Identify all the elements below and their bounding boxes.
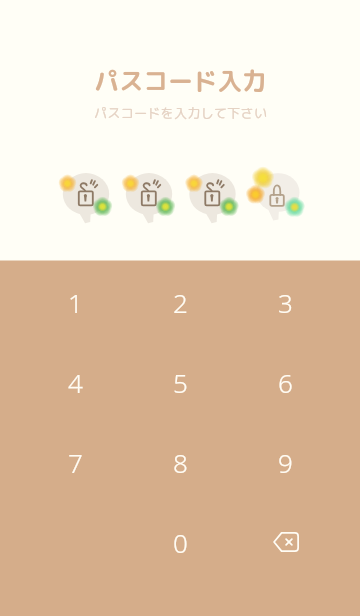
button[interactable]: 0 (128, 502, 233, 582)
button[interactable]: Delete last digit (233, 502, 338, 582)
staticText: 5 (173, 365, 188, 400)
staticText: 8 (173, 445, 188, 480)
button[interactable]: 5 (128, 342, 233, 422)
button[interactable]: 3 (233, 262, 338, 342)
staticText: パスコード入力 (94, 64, 267, 98)
staticText: 3 (278, 285, 293, 320)
button[interactable]: 9 (233, 422, 338, 502)
button[interactable]: 8 (128, 422, 233, 502)
staticText: 1 (68, 285, 83, 320)
button[interactable]: 6 (233, 342, 338, 422)
staticText: 4 (68, 365, 83, 400)
button[interactable]: 4 (22, 342, 128, 422)
button[interactable]: 1 (22, 262, 128, 342)
button[interactable]: 7 (22, 422, 128, 502)
staticText: パスコードを入力して下さい (94, 104, 267, 123)
staticText: 6 (278, 365, 293, 400)
staticText: 7 (68, 445, 83, 480)
staticText: 2 (173, 285, 188, 320)
staticText: 0 (173, 525, 188, 560)
button[interactable]: 2 (128, 262, 233, 342)
staticText: 9 (278, 445, 293, 480)
